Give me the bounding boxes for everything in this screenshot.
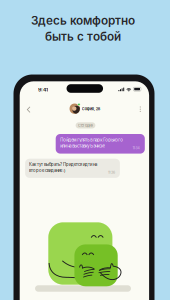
staticText: Пойдем гулять в парк Горького [60, 137, 123, 142]
button[interactable]: More options [135, 103, 145, 115]
staticText: 9:41 [38, 86, 48, 93]
staticText: Сегодня [78, 123, 93, 128]
staticText: Как тут выбрать? Придется идти на [29, 162, 97, 167]
staticText: или на выставку Бэнкси? [60, 143, 105, 149]
staticText: 11:34 [133, 146, 140, 150]
button[interactable]: София, 28 [69, 103, 101, 114]
button[interactable]: Back [23, 104, 35, 116]
staticText: второе свидание :) [29, 168, 66, 173]
staticText: Здесь комфортно [31, 13, 135, 28]
staticText: 11:36 [108, 170, 115, 175]
staticText: София, 28 [82, 106, 101, 111]
staticText: быть с тобой [45, 29, 121, 43]
